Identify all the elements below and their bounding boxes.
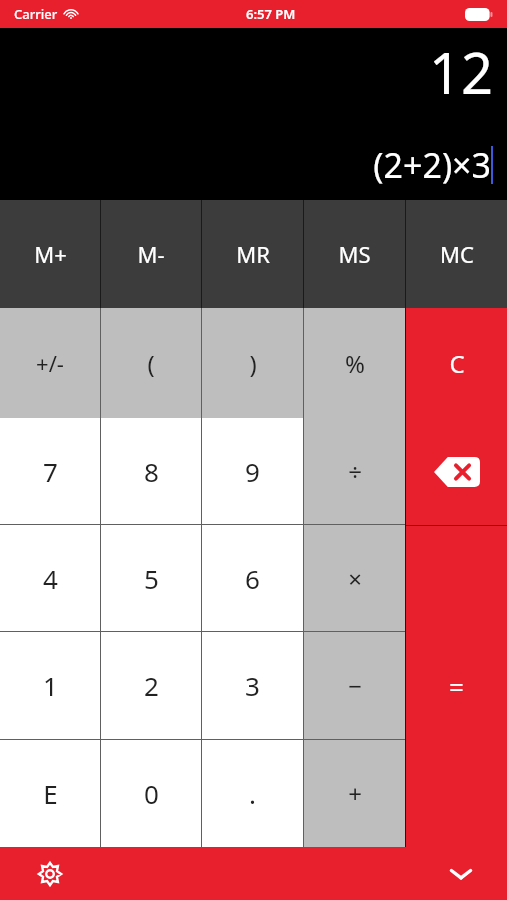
button[interactable]: +/- <box>0 308 100 418</box>
button[interactable]: = <box>406 526 507 847</box>
staticText: 6 <box>245 561 260 596</box>
staticText: 0 <box>144 776 159 811</box>
staticText: MS <box>338 239 371 269</box>
staticText: 8 <box>144 454 159 489</box>
button[interactable]: 3 <box>202 632 303 739</box>
button[interactable]: 9 <box>202 418 303 524</box>
button[interactable]: MC <box>406 200 507 308</box>
staticText: 9 <box>245 454 260 489</box>
button[interactable]: 8 <box>101 418 201 524</box>
staticText: % <box>345 347 365 380</box>
staticText: 2 <box>144 668 159 703</box>
button[interactable]: E <box>0 740 100 847</box>
staticText: = <box>449 669 464 704</box>
button[interactable]: MR <box>202 200 303 308</box>
staticText: ÷ <box>348 455 362 488</box>
staticText: 5 <box>144 561 159 596</box>
staticText: (2+2)×3 <box>373 142 491 188</box>
staticText: 12 <box>428 34 493 110</box>
staticText: M- <box>137 239 165 269</box>
staticText: × <box>348 562 362 595</box>
staticText: M+ <box>34 239 67 269</box>
staticText: 4 <box>43 561 58 596</box>
button[interactable]: M- <box>101 200 201 308</box>
button[interactable]: MS <box>304 200 405 308</box>
button[interactable]: C <box>406 308 507 418</box>
staticText: 6:57 PM <box>246 5 296 23</box>
staticText: MC <box>440 239 474 269</box>
button[interactable]: 4 <box>0 525 100 631</box>
button[interactable]: ) <box>202 308 303 418</box>
button[interactable]: ÷ <box>304 418 405 524</box>
button[interactable]: M+ <box>0 200 100 308</box>
button[interactable]: % <box>304 308 405 418</box>
staticText: C <box>449 347 465 380</box>
button[interactable]: 1 <box>0 632 100 739</box>
button[interactable]: . <box>202 740 303 847</box>
staticText: Carrier <box>14 5 58 23</box>
button[interactable]: − <box>304 632 405 739</box>
button[interactable]: 6 <box>202 525 303 631</box>
button[interactable]: 5 <box>101 525 201 631</box>
button[interactable]: Backspace <box>406 418 507 525</box>
button[interactable]: ( <box>101 308 201 418</box>
staticText: 1 <box>43 668 58 703</box>
staticText: 7 <box>43 454 58 489</box>
staticText: E <box>43 776 58 811</box>
staticText: ( <box>147 347 155 380</box>
button[interactable]: 2 <box>101 632 201 739</box>
staticText: ) <box>249 347 257 380</box>
button[interactable]: Settings <box>30 854 70 894</box>
staticText: − <box>348 669 362 702</box>
staticText: +/- <box>36 348 64 378</box>
staticText: 3 <box>245 668 260 703</box>
staticText: + <box>348 777 362 810</box>
staticText: . <box>249 776 256 811</box>
button[interactable]: Collapse <box>441 854 481 894</box>
staticText: MR <box>236 239 270 269</box>
button[interactable]: 0 <box>101 740 201 847</box>
button[interactable]: × <box>304 525 405 631</box>
button[interactable]: 7 <box>0 418 100 524</box>
button[interactable]: + <box>304 740 405 847</box>
